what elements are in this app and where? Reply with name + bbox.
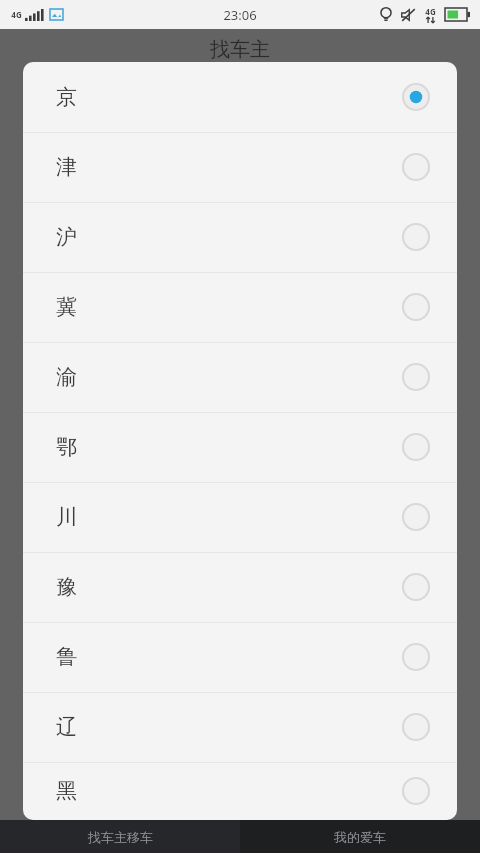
staticText: 鄂 (56, 434, 77, 460)
other: Not selected (401, 502, 431, 532)
button[interactable]: 京 (23, 62, 457, 132)
other: Not selected (401, 712, 431, 742)
button[interactable]: 渝 (23, 342, 457, 412)
other: Not selected (401, 572, 431, 602)
other: Not selected (401, 362, 431, 392)
other: Not selected (401, 776, 431, 806)
staticText: 23:06 (223, 6, 257, 24)
staticText: 我的爱车 (334, 829, 386, 845)
staticText: 找车主 (210, 37, 270, 62)
button[interactable]: 鄂 (23, 412, 457, 482)
button[interactable]: 找车主移车 (0, 820, 240, 853)
staticText: 黑 (56, 778, 77, 804)
other: Not selected (401, 432, 431, 462)
staticText: 4G (425, 6, 436, 17)
button[interactable]: 川 (23, 482, 457, 552)
staticText: 冀 (56, 294, 77, 320)
button[interactable]: 黑 (23, 762, 457, 820)
button[interactable]: 鲁 (23, 622, 457, 692)
other: Selected (401, 82, 431, 112)
staticText: 津 (56, 154, 77, 180)
staticText: 京 (56, 84, 77, 110)
staticText: 渝 (56, 364, 77, 390)
other: Not selected (401, 292, 431, 322)
staticText: 找车主移车 (88, 829, 153, 845)
button[interactable]: 我的爱车 (240, 820, 480, 853)
other: Not selected (401, 642, 431, 672)
button[interactable]: 冀 (23, 272, 457, 342)
staticText: 沪 (56, 224, 77, 250)
staticText: 豫 (56, 574, 77, 600)
button[interactable]: 豫 (23, 552, 457, 622)
button[interactable]: 津 (23, 132, 457, 202)
staticText: 辽 (56, 714, 77, 740)
staticText: 鲁 (56, 644, 77, 670)
other: Not selected (401, 152, 431, 182)
other: Not selected (401, 222, 431, 252)
staticText: 4G (11, 9, 22, 20)
staticText: 川 (56, 504, 77, 530)
button[interactable]: 沪 (23, 202, 457, 272)
button[interactable]: 辽 (23, 692, 457, 762)
